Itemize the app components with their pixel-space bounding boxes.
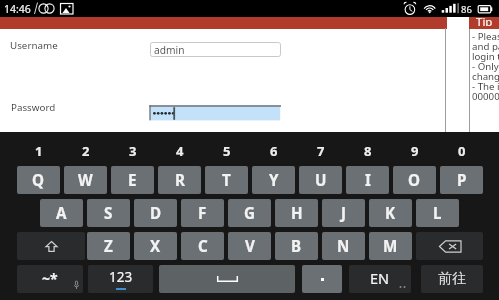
staticText: 14:46 [4, 2, 31, 16]
staticText: EN [370, 268, 390, 288]
button[interactable]: R [158, 166, 201, 194]
staticText: admin [154, 43, 185, 57]
staticText: Z [104, 236, 113, 257]
button[interactable]: U [299, 166, 342, 194]
staticText: chang [472, 70, 499, 83]
staticText: F [198, 203, 207, 224]
staticText: T [222, 170, 231, 191]
button[interactable]: N [322, 232, 365, 260]
button[interactable]: 123 [88, 265, 153, 293]
button[interactable]: T [205, 166, 248, 194]
staticText: X [150, 236, 161, 257]
staticText: J [341, 203, 347, 224]
button[interactable]: K [369, 199, 412, 227]
staticText: 前往 [438, 270, 466, 288]
staticText: P [457, 170, 467, 191]
staticText: Password [11, 101, 56, 114]
staticText: 3 [129, 142, 137, 156]
button[interactable]: EN [349, 265, 411, 293]
button[interactable]: Shift [17, 232, 85, 260]
staticText: 86 [461, 3, 472, 16]
staticText: Username [10, 39, 58, 52]
staticText: A [56, 203, 67, 224]
staticText: 9 [411, 142, 419, 156]
staticText: 0 [458, 142, 466, 156]
button[interactable]: admin [150, 42, 281, 57]
button[interactable]: O [393, 166, 436, 194]
button[interactable]: Space [159, 265, 295, 293]
staticText: login t [472, 50, 499, 63]
staticText: W [78, 170, 93, 191]
button[interactable]: H [275, 199, 318, 227]
staticText: 6 [270, 142, 278, 156]
staticText: 123 [109, 268, 133, 286]
staticText: G [244, 203, 255, 224]
staticText: B [291, 236, 302, 257]
staticText: C [198, 236, 208, 257]
staticText: 00000 [472, 90, 499, 103]
button[interactable]: L [416, 199, 459, 227]
staticText: 2 [82, 142, 90, 156]
staticText: 4 [176, 142, 184, 156]
staticText: D [150, 203, 162, 224]
staticText: Q [32, 170, 45, 191]
staticText: 1 [35, 142, 43, 156]
button[interactable]: Backspace [416, 232, 483, 260]
staticText: U [315, 170, 327, 191]
button[interactable]: ~* [17, 265, 83, 293]
button[interactable]: A [40, 199, 83, 227]
staticText: 7 [317, 142, 325, 156]
staticText: 8 [364, 142, 372, 156]
staticText: L [433, 203, 442, 224]
button[interactable]: F [181, 199, 224, 227]
staticText: E [128, 170, 137, 191]
button[interactable]: J [322, 199, 365, 227]
staticText: O [408, 170, 421, 191]
staticText: Y [269, 170, 279, 191]
staticText: K [385, 203, 396, 224]
button[interactable]: 前往 [421, 265, 483, 293]
button[interactable]: P [440, 166, 483, 194]
staticText: - Pleas [472, 30, 499, 43]
button[interactable]: W [64, 166, 107, 194]
staticText: I [365, 170, 371, 191]
staticText: V [245, 236, 255, 257]
staticText: - The i [472, 80, 499, 93]
button[interactable]: Z [87, 232, 130, 260]
button[interactable]: X [134, 232, 177, 260]
staticText: and pa [472, 40, 499, 53]
staticText: Tip [476, 14, 493, 26]
button[interactable]: V [228, 232, 271, 260]
button[interactable]: M [369, 232, 412, 260]
button[interactable]: C [181, 232, 224, 260]
staticText: N [337, 236, 350, 257]
button[interactable]: Period [302, 265, 342, 293]
button[interactable]: E [111, 166, 154, 194]
button[interactable]: I [346, 166, 389, 194]
staticText: S [104, 203, 113, 224]
button[interactable]: Y [252, 166, 295, 194]
staticText: - Only [472, 60, 499, 73]
button[interactable]: B [275, 232, 318, 260]
staticText: R [175, 170, 185, 191]
staticText: M [383, 236, 398, 257]
button[interactable]: Q [17, 166, 60, 194]
staticText: 5 [223, 142, 231, 156]
button[interactable]: D [134, 199, 177, 227]
staticText: ~* [42, 269, 58, 288]
button[interactable] [149, 104, 282, 121]
staticText: H [291, 203, 303, 224]
button[interactable]: S [87, 199, 130, 227]
button[interactable]: G [228, 199, 271, 227]
